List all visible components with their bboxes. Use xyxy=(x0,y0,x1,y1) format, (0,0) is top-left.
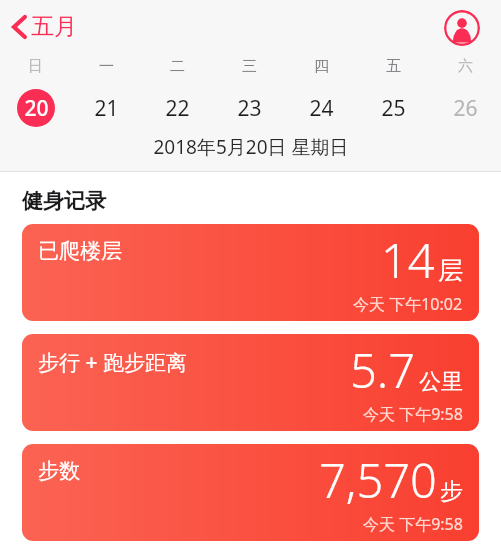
button[interactable]: 20 xyxy=(0,88,71,128)
button[interactable]: 25 xyxy=(357,88,429,128)
staticText: 公里 xyxy=(419,368,463,396)
staticText: 20 xyxy=(24,94,49,123)
staticText: 今天 下午9:58 xyxy=(363,513,463,535)
staticText: 26 xyxy=(453,94,478,123)
staticText: 五月 xyxy=(31,12,77,41)
staticText: 23 xyxy=(237,94,262,123)
staticText: 三 xyxy=(242,57,257,76)
staticText: 7,570 xyxy=(319,448,437,512)
staticText: 25 xyxy=(381,94,406,123)
staticText: 六 xyxy=(458,57,473,76)
staticText: 今天 下午10:02 xyxy=(353,293,463,315)
button[interactable]: 步数 xyxy=(22,444,479,541)
button[interactable]: Profile xyxy=(444,10,480,46)
staticText: 2018年5月20日 星期日 xyxy=(153,134,349,160)
staticText: 日 xyxy=(28,57,43,76)
staticText: 一 xyxy=(99,57,114,76)
staticText: 今天 下午9:58 xyxy=(363,403,463,425)
staticText: 四 xyxy=(314,57,329,76)
staticText: 24 xyxy=(309,94,334,123)
staticText: 已爬楼层 xyxy=(38,238,122,264)
button[interactable]: 已爬楼层 xyxy=(22,224,479,321)
button[interactable]: 五月 xyxy=(8,8,81,45)
staticText: 5.7 xyxy=(350,338,416,402)
staticText: 21 xyxy=(94,94,119,123)
staticText: 22 xyxy=(165,94,190,123)
button[interactable]: 23 xyxy=(213,88,285,128)
staticText: 五 xyxy=(386,57,401,76)
staticText: 层 xyxy=(438,255,463,286)
staticText: 二 xyxy=(170,57,185,76)
button[interactable]: 步行 + 跑步距离 xyxy=(22,334,479,431)
button[interactable]: 21 xyxy=(71,88,142,128)
button[interactable]: 22 xyxy=(142,88,213,128)
staticText: 步 xyxy=(440,477,463,506)
button[interactable]: 24 xyxy=(285,88,357,128)
button[interactable]: 26 xyxy=(429,88,501,128)
staticText: 步数 xyxy=(38,458,80,484)
staticText: 14 xyxy=(381,228,435,292)
staticText: 健身记录 xyxy=(22,188,106,214)
staticText: 步行 + 跑步距离 xyxy=(38,348,187,377)
